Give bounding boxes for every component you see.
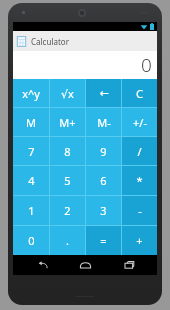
staticText: 8 <box>64 144 71 159</box>
staticText: 7 <box>28 144 35 159</box>
button[interactable]: 9 <box>86 137 121 165</box>
staticText: 0 <box>141 52 152 78</box>
button[interactable]: 7 <box>13 137 49 165</box>
button[interactable]: + <box>122 226 157 255</box>
staticText: M- <box>97 115 111 130</box>
button[interactable]: 8 <box>50 137 85 165</box>
button[interactable]: / <box>122 137 157 165</box>
button[interactable]: C <box>122 79 157 107</box>
staticText: 5 <box>64 173 71 188</box>
staticText: C <box>136 86 143 101</box>
staticText: 6 <box>100 173 107 188</box>
button[interactable]: Recents <box>114 255 144 275</box>
button[interactable]: 3 <box>86 196 121 225</box>
button[interactable]: +/- <box>122 108 157 136</box>
staticText: +/- <box>133 115 147 130</box>
staticText: . <box>66 233 69 248</box>
staticText: + <box>136 233 143 248</box>
staticText: M <box>26 115 36 130</box>
button[interactable]: 1 <box>13 196 49 225</box>
button[interactable]: 0 <box>13 226 49 255</box>
staticText: / <box>137 144 142 159</box>
staticText: 0 <box>28 233 35 248</box>
button[interactable]: √x <box>50 79 85 107</box>
button[interactable]: ← <box>86 79 121 107</box>
staticText: 2 <box>64 203 71 218</box>
staticText: = <box>100 233 107 248</box>
button[interactable]: 5 <box>50 166 85 195</box>
button[interactable]: - <box>122 196 157 225</box>
staticText: M+ <box>59 115 76 130</box>
button[interactable]: . <box>50 226 85 255</box>
button[interactable]: 2 <box>50 196 85 225</box>
staticText: √x <box>61 86 74 101</box>
staticText: * <box>136 173 143 188</box>
staticText: 4 <box>28 173 35 188</box>
staticText: Calculator <box>31 36 69 47</box>
button[interactable]: M- <box>86 108 121 136</box>
button[interactable]: 6 <box>86 166 121 195</box>
staticText: 1 <box>28 203 35 218</box>
staticText: 9 <box>100 144 107 159</box>
button[interactable]: Home <box>70 255 100 275</box>
button[interactable]: = <box>86 226 121 255</box>
button[interactable]: * <box>122 166 157 195</box>
staticText: ← <box>99 87 109 100</box>
button[interactable]: M <box>13 108 49 136</box>
button[interactable]: 4 <box>13 166 49 195</box>
button[interactable]: x^y <box>13 79 49 107</box>
button[interactable]: M+ <box>50 108 85 136</box>
staticText: x^y <box>22 86 40 101</box>
staticText: - <box>138 203 142 218</box>
staticText: 3 <box>100 203 107 218</box>
button[interactable]: Back <box>27 255 57 275</box>
